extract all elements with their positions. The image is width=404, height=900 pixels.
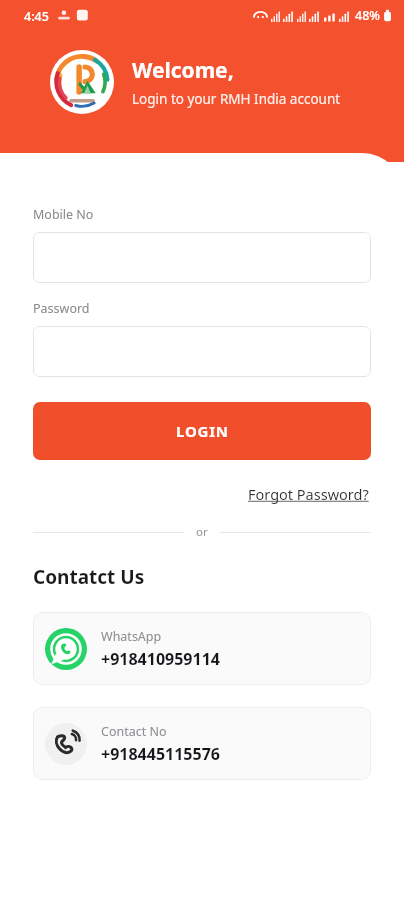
- staticText: LOGIN: [176, 421, 229, 441]
- other: WhatsApp: [45, 628, 87, 670]
- button[interactable]: Forgot Password?: [246, 482, 371, 506]
- staticText: or: [196, 524, 208, 540]
- staticText: Mobile No: [33, 206, 94, 223]
- staticText: Contact No: [101, 723, 167, 740]
- button[interactable]: Call contact number: [33, 707, 371, 780]
- button[interactable]: [33, 232, 371, 283]
- staticText: Forgot Password?: [248, 484, 369, 504]
- button[interactable]: [33, 326, 371, 377]
- staticText: Login to your RMH India account: [132, 90, 341, 108]
- staticText: +918410959114: [101, 648, 220, 670]
- button[interactable]: WhatsApp: [33, 612, 371, 685]
- other: RMH India logo: [50, 50, 114, 114]
- other: Call contact number: [45, 723, 87, 765]
- staticText: Password: [33, 300, 90, 317]
- staticText: 4:45: [24, 8, 49, 25]
- staticText: +918445115576: [101, 743, 220, 765]
- button[interactable]: LOGIN: [33, 402, 371, 460]
- staticText: Welcome,: [132, 56, 234, 85]
- staticText: Contatct Us: [33, 564, 145, 590]
- staticText: 48%: [355, 7, 380, 24]
- staticText: WhatsApp: [101, 628, 162, 645]
